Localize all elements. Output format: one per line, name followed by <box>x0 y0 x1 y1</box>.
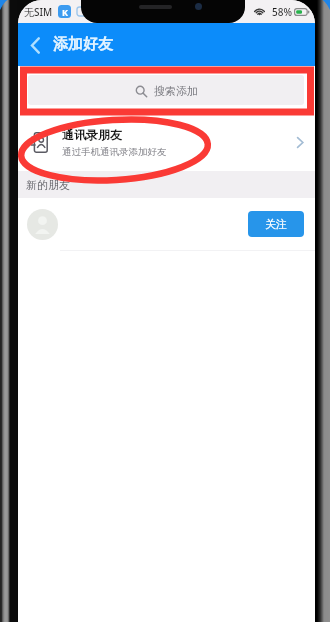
button[interactable]: 搜索添加 <box>28 75 304 105</box>
button[interactable]: 通讯录朋友 <box>18 114 315 171</box>
staticText: 通过手机通讯录添加好友 <box>62 146 167 158</box>
staticText: K <box>62 6 68 18</box>
button[interactable]: 返回 <box>22 25 48 65</box>
button[interactable]: 关注 <box>248 211 304 237</box>
staticText: 无SIM <box>24 5 53 19</box>
staticText: 58% <box>272 5 292 19</box>
staticText: 添加好友 <box>53 35 113 54</box>
staticText: 关注 <box>265 217 287 231</box>
staticText: 搜索添加 <box>154 84 198 98</box>
staticText: 通讯录朋友 <box>62 127 122 142</box>
staticText: 新的朋友 <box>26 178 70 192</box>
button[interactable]: 关注 <box>18 198 315 250</box>
